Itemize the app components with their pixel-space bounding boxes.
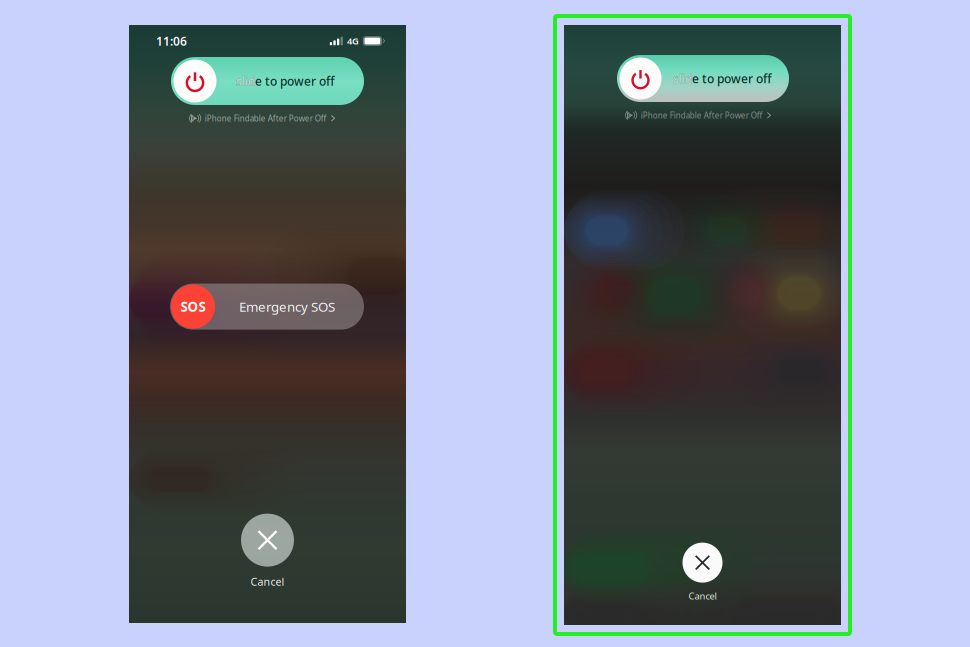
button[interactable]: iPhone Findable After Power Off (188, 113, 336, 124)
button[interactable]: iPhone Findable After Power Off (624, 110, 772, 121)
staticText: iPhone Findable After Power Off (205, 113, 327, 124)
staticText: slide to power off (236, 73, 335, 89)
staticText: slide to power off (673, 70, 772, 86)
button[interactable]: Cancel (564, 543, 841, 602)
button[interactable]: slide to power off (617, 55, 789, 102)
button[interactable]: Emergency SOS (170, 284, 364, 330)
staticText: slid (236, 73, 255, 89)
staticText: iPhone Findable After Power Off (641, 110, 763, 121)
staticText: 4G (347, 35, 359, 47)
staticText: slid (673, 70, 692, 86)
staticText: Cancel (250, 575, 284, 589)
staticText: Emergency SOS (239, 298, 335, 315)
button[interactable]: Cancel (129, 514, 406, 589)
staticText: SOS (180, 298, 205, 315)
staticText: 11:06 (156, 33, 187, 49)
staticText: Cancel (688, 590, 716, 602)
button[interactable]: slide to power off (171, 57, 364, 105)
